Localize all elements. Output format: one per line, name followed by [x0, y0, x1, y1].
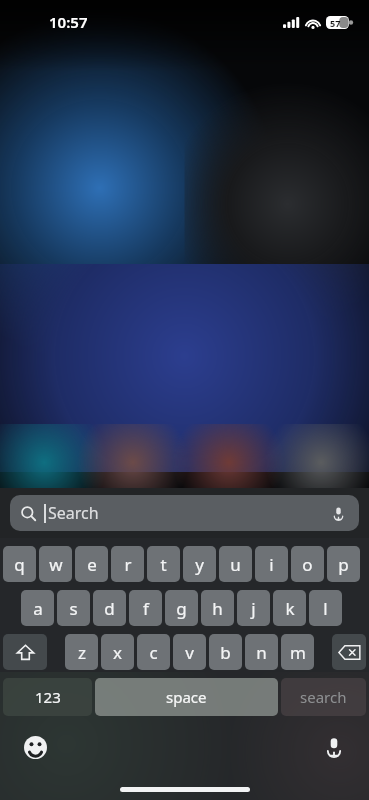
button[interactable]: Shift [3, 634, 47, 670]
button[interactable]: p [327, 546, 360, 582]
button[interactable]: r [111, 546, 144, 582]
button[interactable]: 123 [3, 678, 92, 716]
staticText: h [212, 597, 223, 620]
staticText: w [49, 553, 63, 576]
button[interactable]: x [101, 634, 134, 670]
button[interactable]: s [57, 590, 90, 626]
staticText: space [166, 687, 207, 707]
button[interactable]: k [273, 590, 306, 626]
staticText: z [78, 641, 86, 664]
button[interactable]: Backspace [332, 634, 366, 670]
button[interactable]: e [75, 546, 108, 582]
staticText: e [87, 553, 97, 576]
button[interactable]: a [21, 590, 54, 626]
button[interactable]: search [281, 678, 366, 716]
button[interactable]: m [281, 634, 314, 670]
button[interactable]: o [291, 546, 324, 582]
button[interactable]: c [137, 634, 170, 670]
staticText: x [113, 641, 122, 664]
staticText: a [33, 597, 43, 620]
button[interactable]: Voice search [323, 498, 353, 528]
staticText: y [195, 553, 204, 576]
staticText: g [176, 597, 187, 620]
button[interactable]: Dictation [317, 730, 351, 764]
staticText: u [230, 553, 241, 576]
button[interactable]: z [65, 634, 98, 670]
button[interactable]: y [183, 546, 216, 582]
button[interactable]: Search [10, 495, 359, 531]
button[interactable]: q [3, 546, 36, 582]
staticText: q [14, 553, 25, 576]
staticText: r [124, 553, 132, 576]
button[interactable]: u [219, 546, 252, 582]
staticText: k [285, 597, 295, 620]
button[interactable]: b [209, 634, 242, 670]
staticText: d [104, 597, 115, 620]
staticText: search [300, 687, 347, 707]
button[interactable]: space [95, 678, 278, 716]
staticText: c [149, 641, 158, 664]
staticText: t [160, 553, 167, 576]
button[interactable]: t [147, 546, 180, 582]
staticText: m [290, 641, 306, 664]
button[interactable]: i [255, 546, 288, 582]
staticText: i [269, 553, 274, 576]
button[interactable]: g [165, 590, 198, 626]
staticText: 123 [35, 687, 61, 707]
staticText: l [323, 597, 328, 620]
button[interactable]: l [309, 590, 342, 626]
button[interactable]: n [245, 634, 278, 670]
staticText: Search [48, 502, 99, 524]
button[interactable]: f [129, 590, 162, 626]
staticText: j [251, 597, 256, 620]
button[interactable]: w [39, 546, 72, 582]
staticText: b [220, 641, 231, 664]
staticText: s [69, 597, 78, 620]
staticText: 10:57 [49, 12, 88, 32]
staticText: v [185, 641, 194, 664]
button[interactable]: v [173, 634, 206, 670]
staticText: n [256, 641, 267, 664]
staticText: f [143, 597, 149, 620]
staticText: 57 [330, 17, 341, 29]
button[interactable]: h [201, 590, 234, 626]
button[interactable]: j [237, 590, 270, 626]
staticText: o [302, 553, 313, 576]
staticText: p [338, 553, 349, 576]
button[interactable]: Emoji [18, 730, 52, 764]
button[interactable]: d [93, 590, 126, 626]
